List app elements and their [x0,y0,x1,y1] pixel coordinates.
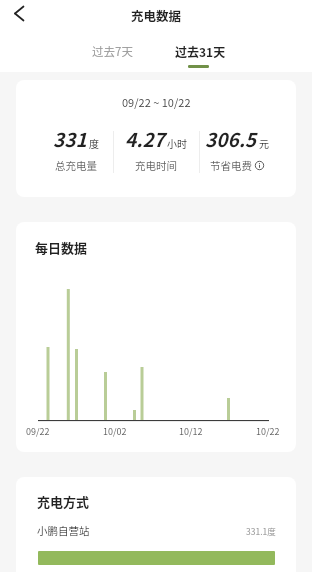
staticText: 每日数据 [35,238,88,257]
staticText: 度 [89,136,99,150]
button[interactable]: 充电方式 [16,477,296,572]
staticText: 331.1度 [246,525,276,537]
staticText: 充电数据 [131,6,182,24]
staticText: 10/22 [256,425,280,438]
staticText: 充电方式 [37,492,90,511]
staticText: 09/22 [26,425,50,438]
staticText: 过去31天 [175,43,226,60]
staticText: 过去7天 [92,43,133,60]
staticText: 小鹏自营站 [37,523,90,538]
staticText: 10/12 [179,425,203,438]
staticText: 09/22 ~ 10/22 [122,94,191,110]
staticText: 306.5 [205,125,257,153]
button[interactable]: 过去7天 [68,38,156,64]
staticText: 节省电费 [210,158,252,173]
staticText: 元 [259,136,269,150]
button[interactable] [8,2,32,26]
staticText: 331 [53,125,87,153]
button[interactable]: 过去31天 [156,38,244,64]
staticText: 4.27 [125,125,165,153]
staticText: 充电时间 [135,158,177,173]
staticText: 总充电量 [55,158,97,173]
staticText: 10/02 [103,425,127,438]
staticText: 小时 [167,136,187,150]
